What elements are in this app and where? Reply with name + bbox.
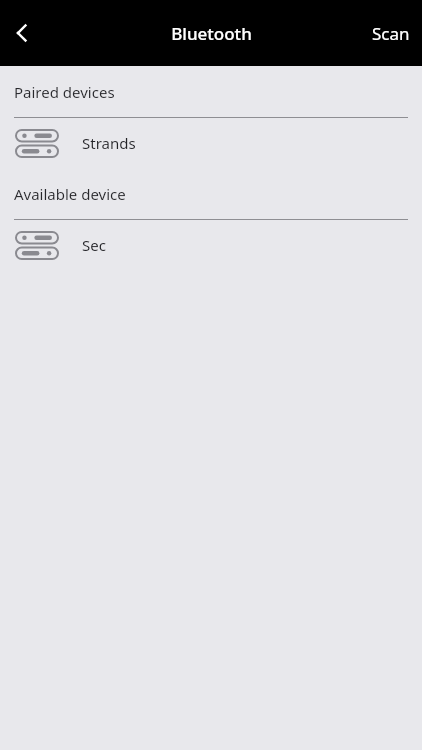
button[interactable]: Scan [360,12,422,55]
staticText: Strands [82,133,136,153]
staticText: Sec [82,235,106,255]
button[interactable]: Strands [14,118,408,168]
staticText: Paired devices [14,82,115,102]
button[interactable]: Sec [14,220,408,270]
staticText: Scan [372,22,410,45]
staticText: Available device [14,184,126,204]
staticText: Bluetooth [171,22,252,45]
button[interactable]: Back [2,13,42,53]
